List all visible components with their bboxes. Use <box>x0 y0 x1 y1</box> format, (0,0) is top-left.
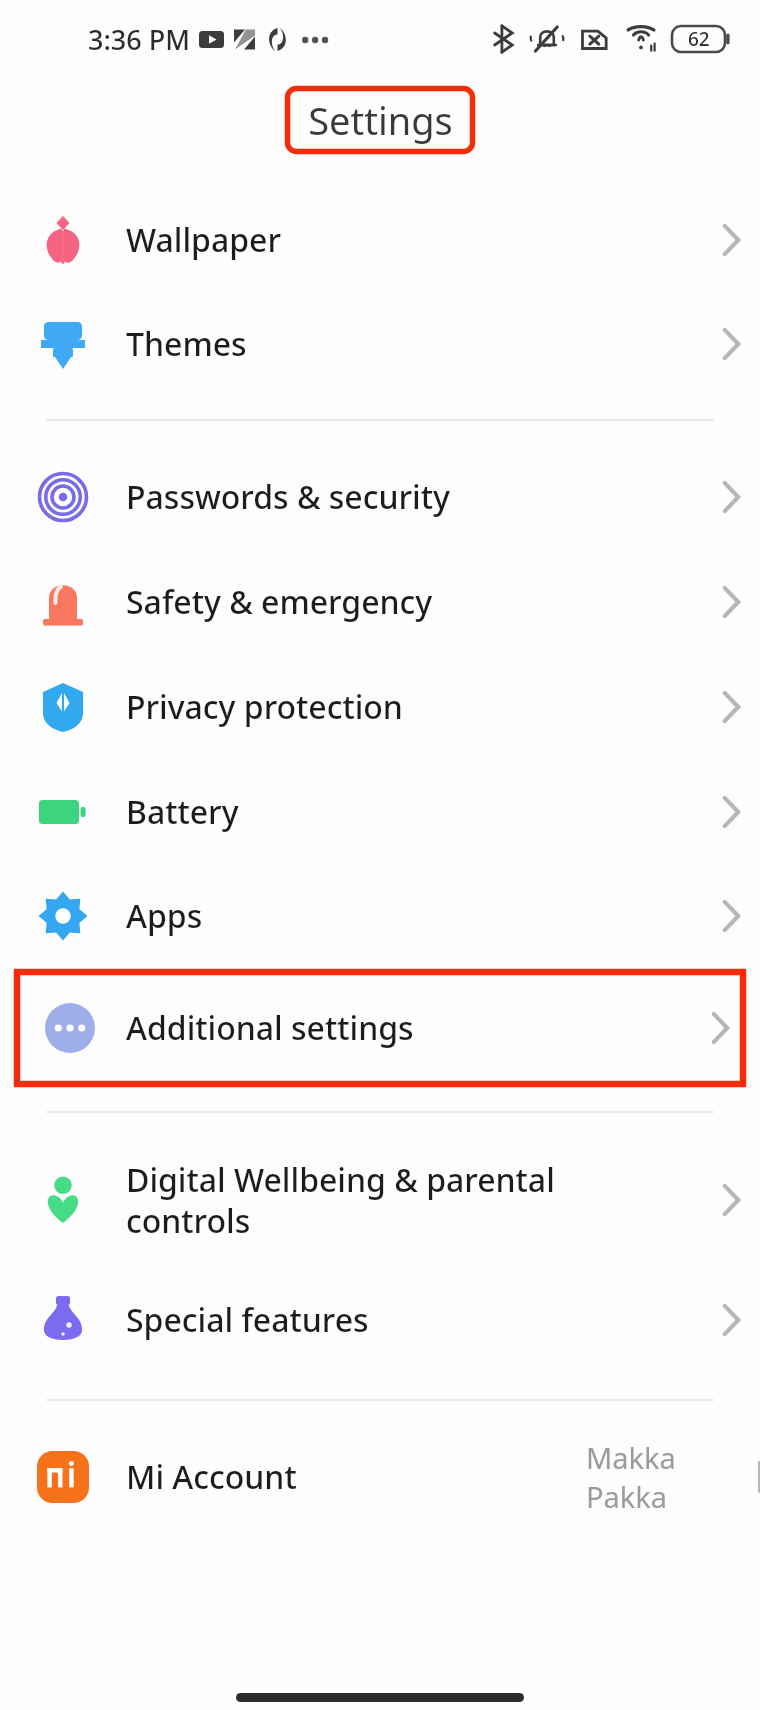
button[interactable]: Digital Wellbeing & parental controls <box>0 1136 760 1264</box>
staticText: Mi Account <box>126 1455 297 1499</box>
staticText: Settings <box>308 94 453 146</box>
staticText: Safety & emergency <box>126 580 433 624</box>
staticText: 3:36 PM <box>88 21 190 58</box>
button[interactable]: Additional settings <box>14 969 746 1087</box>
button[interactable]: Mi Account <box>0 1424 760 1530</box>
button[interactable]: Passwords & security <box>0 444 760 549</box>
staticText: 62 <box>688 26 710 52</box>
staticText: Additional settings <box>126 1006 414 1050</box>
staticText: Passwords & security <box>126 475 450 519</box>
button[interactable]: Apps <box>0 864 760 968</box>
staticText: Privacy protection <box>126 685 403 729</box>
staticText: Themes <box>126 322 247 366</box>
button[interactable]: Safety & emergency <box>0 549 760 654</box>
staticText: Special features <box>126 1298 369 1342</box>
staticText: Makka Pakka <box>586 1438 760 1516</box>
staticText: Digital Wellbeing & parental controls <box>126 1158 556 1243</box>
button[interactable]: Wallpaper <box>0 188 760 292</box>
button[interactable]: Themes <box>0 292 760 396</box>
staticText: Battery <box>126 790 239 834</box>
staticText: Wallpaper <box>126 218 281 262</box>
button[interactable]: Special features <box>0 1264 760 1376</box>
button[interactable]: Privacy protection <box>0 654 760 759</box>
button[interactable]: Battery <box>0 759 760 864</box>
staticText: Apps <box>126 894 203 938</box>
